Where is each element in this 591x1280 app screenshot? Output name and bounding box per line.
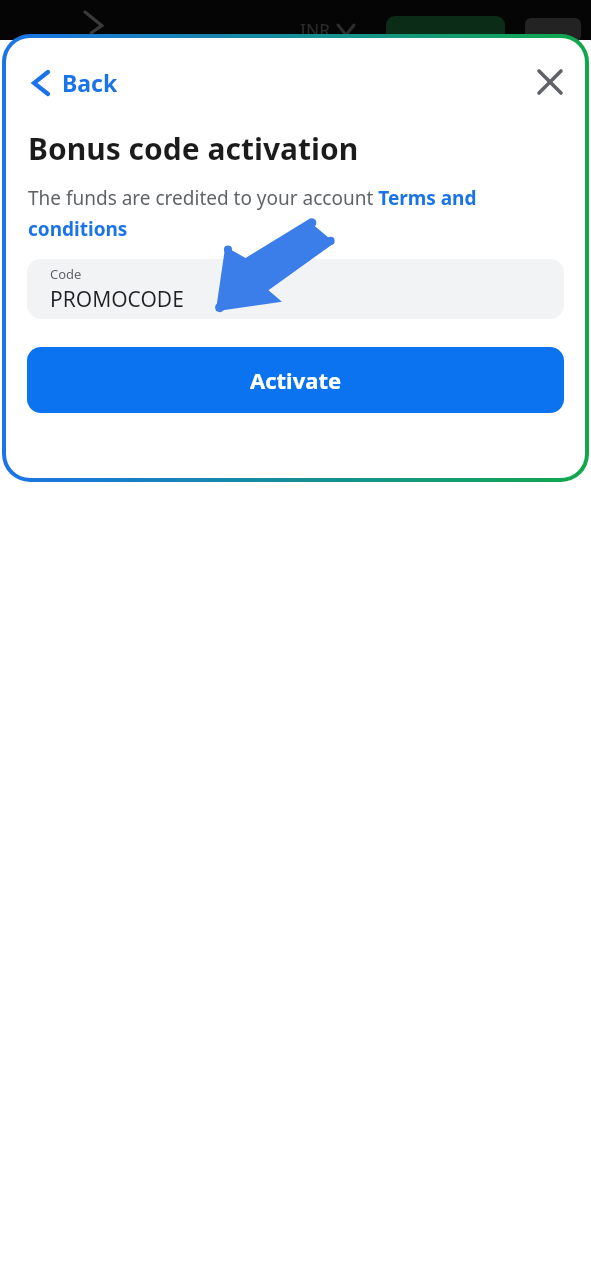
staticText: Bonus code activation: [28, 128, 359, 169]
button[interactable]: The funds are credited to your account T…: [28, 185, 563, 241]
button[interactable]: Activate: [27, 347, 564, 413]
staticText: Activate: [250, 365, 342, 395]
button[interactable]: Close: [527, 59, 573, 105]
staticText: Code: [50, 265, 82, 283]
staticText: PROMOCODE: [50, 285, 184, 314]
staticText: Back: [62, 67, 118, 98]
staticText: INR: [300, 18, 330, 41]
button[interactable]: Code: [27, 259, 564, 319]
button[interactable]: Back: [24, 59, 128, 106]
